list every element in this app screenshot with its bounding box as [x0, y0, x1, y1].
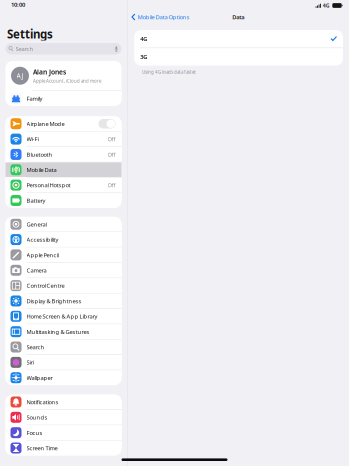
staticText: Settings — [7, 26, 53, 42]
staticText: AJ — [16, 71, 23, 80]
staticText: 10:00 — [11, 0, 25, 8]
button[interactable]: Siri — [5, 355, 121, 370]
button[interactable]: Bluetooth — [5, 147, 121, 162]
staticText: Camera — [26, 266, 46, 274]
button[interactable]: Airplane Mode — [5, 116, 121, 131]
button[interactable]: Home Screen & App Library — [5, 309, 121, 324]
button[interactable]: Mobile Data — [5, 162, 121, 177]
staticText: Siri — [26, 358, 33, 366]
button[interactable]: Display & Brightness — [5, 294, 121, 308]
staticText: Search — [16, 45, 34, 53]
staticText: Notifications — [26, 398, 58, 406]
button[interactable]: Focus — [5, 425, 121, 440]
staticText: Mobile Data Options — [138, 13, 190, 21]
staticText: 3G — [140, 53, 147, 61]
staticText: Family — [26, 95, 42, 102]
button[interactable]: 4G — [134, 30, 343, 47]
button[interactable]: Battery — [5, 193, 121, 208]
button[interactable]: Camera — [5, 263, 121, 278]
button[interactable]: Wi-Fi — [5, 132, 121, 146]
staticText: Off — [107, 150, 115, 158]
button[interactable]: Screen Time — [5, 441, 121, 455]
staticText: Airplane Mode — [26, 120, 64, 128]
button[interactable]: General — [5, 217, 121, 232]
staticText: Focus — [26, 429, 42, 437]
staticText: Personal Hotspot — [26, 181, 70, 189]
staticText: Data — [232, 13, 244, 21]
staticText: Sounds — [26, 413, 47, 421]
button[interactable]: Search — [5, 340, 121, 354]
staticText: Mobile Data — [26, 166, 56, 174]
staticText: Apple Account, iCloud and more — [33, 78, 101, 84]
button[interactable]: Mobile Data Options — [128, 11, 194, 23]
button[interactable]: Sounds — [5, 410, 121, 425]
button[interactable]: Control Centre — [5, 278, 121, 293]
staticText: Alan Jones — [33, 67, 66, 77]
button[interactable]: Multitasking & Gestures — [5, 324, 121, 339]
staticText: Accessibility — [26, 236, 58, 243]
staticText: Search — [26, 343, 44, 351]
button[interactable]: Personal Hotspot — [5, 178, 121, 193]
button[interactable]: 3G — [134, 48, 343, 66]
staticText: 4G — [140, 35, 147, 43]
staticText: Battery — [26, 197, 45, 204]
staticText: Wallpaper — [26, 374, 52, 382]
staticText: Using 4G loads data faster. — [142, 69, 196, 75]
staticText: Off — [107, 181, 115, 189]
staticText: Apple Pencil — [26, 251, 58, 259]
button[interactable]: Apple Pencil — [5, 248, 121, 262]
staticText: Home Screen & App Library — [26, 312, 97, 320]
staticText: General — [26, 220, 46, 228]
button[interactable]: Notifications — [5, 395, 121, 409]
staticText: Off — [107, 135, 115, 143]
button[interactable]: AJ — [5, 61, 121, 90]
staticText: Screen Time — [26, 444, 57, 452]
staticText: 4G — [323, 2, 330, 9]
staticText: Display & Brightness — [26, 297, 81, 305]
button[interactable]: Accessibility — [5, 232, 121, 247]
button[interactable]: Family — [5, 91, 121, 106]
button[interactable]: Wallpaper — [5, 370, 121, 385]
staticText: Wi-Fi — [26, 135, 38, 143]
button[interactable]: Search — [5, 43, 121, 54]
staticText: Control Centre — [26, 282, 64, 289]
staticText: Multitasking & Gestures — [26, 328, 89, 336]
staticText: Bluetooth — [26, 150, 52, 158]
